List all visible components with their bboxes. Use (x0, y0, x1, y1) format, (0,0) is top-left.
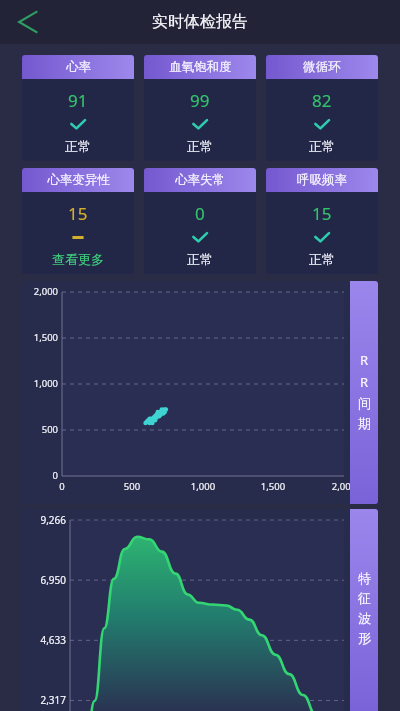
staticText: 1,500 (253, 480, 293, 493)
staticText: 6,950 (22, 573, 66, 587)
staticText: 心率 (66, 59, 91, 75)
staticText: 15 (68, 202, 88, 225)
staticText: 正常 (187, 251, 213, 267)
staticText: 正常 (309, 138, 335, 154)
staticText: 0 (42, 480, 82, 493)
staticText: 间 (358, 395, 371, 411)
staticText: 1,000 (22, 377, 58, 390)
staticText: 正常 (309, 251, 335, 267)
button[interactable]: R (350, 281, 378, 504)
staticText: 2,317 (22, 693, 66, 707)
staticText: 82 (312, 89, 332, 112)
staticText: 心率失常 (175, 172, 225, 188)
staticText: 呼吸频率 (297, 172, 347, 188)
staticText: 91 (68, 89, 88, 112)
staticText: 4,633 (22, 633, 66, 647)
staticText: 正常 (65, 138, 91, 154)
staticText: 正常 (187, 138, 213, 154)
staticText: 1,000 (183, 480, 223, 493)
staticText: 心率变异性 (47, 172, 110, 188)
staticText: 特 (358, 570, 371, 586)
staticText: 波 (358, 610, 371, 626)
button[interactable]: 呼吸频率 (266, 168, 378, 274)
staticText: R (360, 373, 369, 391)
button[interactable]: 9,266 (22, 509, 378, 711)
button[interactable]: 2,000 (22, 281, 378, 504)
staticText: 征 (358, 590, 371, 606)
button[interactable]: 心率失常 (144, 168, 256, 274)
staticText: 形 (358, 630, 371, 646)
staticText: 500 (22, 423, 58, 436)
staticText: 查看更多 (52, 251, 104, 267)
staticText: 血氧饱和度 (169, 59, 232, 75)
staticText: 15 (312, 202, 332, 225)
button[interactable]: Back (8, 4, 44, 40)
staticText: 期 (358, 415, 371, 431)
staticText: R (360, 351, 369, 369)
staticText: 1,500 (22, 331, 58, 344)
staticText: 微循环 (303, 59, 341, 75)
staticText: 2,000 (324, 480, 364, 493)
staticText: 500 (112, 480, 152, 493)
staticText: 实时体检报告 (152, 12, 248, 32)
staticText: 2,000 (22, 285, 58, 298)
button[interactable]: 心率 (22, 55, 134, 161)
staticText: 9,266 (22, 513, 66, 527)
button[interactable]: 心率变异性 (22, 168, 134, 274)
button[interactable]: 微循环 (266, 55, 378, 161)
button[interactable]: 血氧饱和度 (144, 55, 256, 161)
staticText: 99 (190, 89, 210, 112)
button[interactable]: 特 (350, 509, 378, 711)
staticText: 0 (195, 202, 205, 225)
staticText: 0 (22, 469, 58, 482)
